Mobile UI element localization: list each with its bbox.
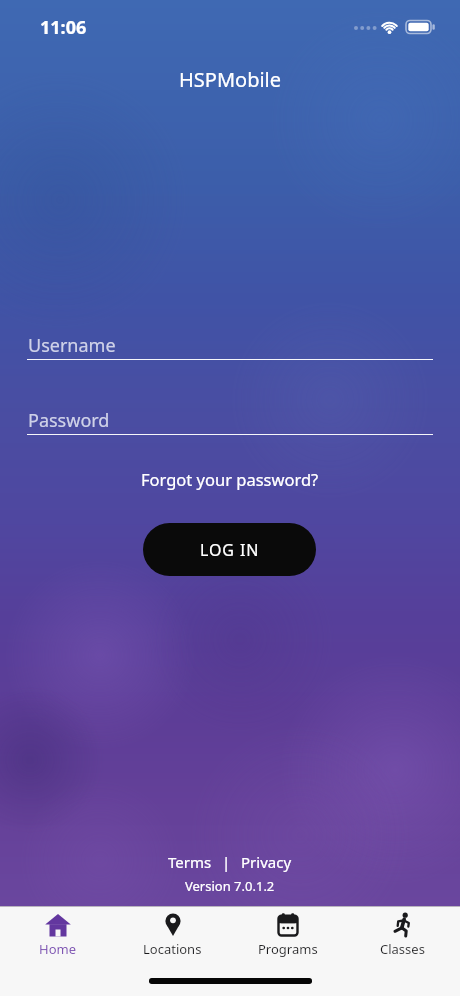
staticText: Version 7.0.1.2: [185, 877, 275, 895]
staticText: Username: [28, 333, 116, 358]
staticText: Programs: [258, 940, 318, 958]
staticText: Classes: [380, 940, 425, 958]
staticText: 11:06: [40, 15, 87, 40]
staticText: HSPMobile: [179, 66, 282, 93]
button[interactable]: Terms: [168, 852, 212, 872]
staticText: |: [222, 852, 231, 872]
button[interactable]: Privacy: [241, 852, 292, 872]
button[interactable]: Programs: [230, 907, 345, 996]
staticText: LOG IN: [200, 539, 260, 561]
button[interactable]: Password: [27, 405, 433, 435]
staticText: Home: [39, 940, 76, 958]
button[interactable]: Home: [0, 907, 115, 996]
button[interactable]: Locations: [115, 907, 230, 996]
staticText: Password: [28, 408, 110, 433]
button[interactable]: Username: [27, 330, 433, 360]
staticText: Locations: [143, 940, 202, 958]
button[interactable]: Classes: [345, 907, 460, 996]
button[interactable]: Forgot your password?: [141, 468, 319, 490]
button[interactable]: LOG IN: [143, 523, 316, 576]
